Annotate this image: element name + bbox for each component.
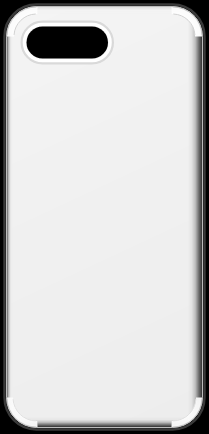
button[interactable]: Clear phone case, back view [0, 0, 209, 434]
